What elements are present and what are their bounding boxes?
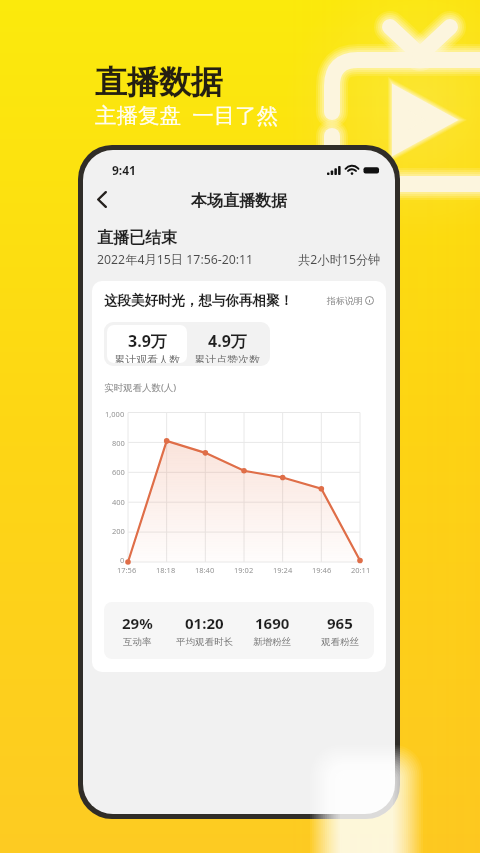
staticText: 主播复盘 一目了然 [95, 100, 279, 129]
staticText: 1690 [255, 613, 290, 633]
staticText: 01:20 [185, 613, 224, 633]
staticText: 20:11 [351, 565, 371, 575]
staticText: 19:24 [273, 565, 293, 575]
staticText: 19:02 [234, 565, 254, 575]
staticText: 9:41 [112, 162, 136, 178]
button[interactable]: 4.9万 [187, 325, 267, 363]
staticText: 本场直播数据 [191, 191, 287, 211]
staticText: 17:56 [117, 565, 137, 575]
staticText: 累计点赞次数 [194, 353, 260, 363]
staticText: 3.9万 [128, 330, 167, 352]
button[interactable]: 指标说明 [327, 295, 374, 306]
staticText: 互动率 [123, 636, 152, 648]
staticText: 18:40 [195, 565, 215, 575]
staticText: 观看粉丝 [321, 636, 359, 648]
staticText: 400 [112, 497, 125, 507]
staticText: 29% [122, 613, 153, 633]
staticText: 1,000 [105, 409, 125, 419]
staticText: 实时观看人数(人) [104, 381, 177, 394]
staticText: 18:18 [156, 565, 176, 575]
staticText: 600 [112, 467, 125, 477]
staticText: 800 [112, 438, 125, 448]
staticText: 指标说明 [327, 295, 363, 306]
staticText: 累计观看人数 [114, 353, 180, 363]
button[interactable]: 3.9万 [107, 325, 187, 363]
staticText: 4.9万 [208, 330, 247, 352]
staticText: 平均观看时长 [176, 636, 233, 648]
staticText: 19:46 [312, 565, 332, 575]
staticText: 200 [112, 526, 125, 536]
staticText: 共2小时15分钟 [298, 251, 381, 268]
staticText: 直播已结束 [97, 228, 177, 248]
staticText: 新增粉丝 [253, 636, 291, 648]
staticText: 这段美好时光，想与你再相聚！ [104, 292, 293, 309]
staticText: 2022年4月15日 17:56-20:11 [97, 251, 254, 268]
button[interactable]: 返回 [87, 184, 117, 214]
staticText: 965 [327, 613, 353, 633]
staticText: 直播数据 [95, 62, 223, 102]
staticText: 0 [120, 555, 125, 565]
